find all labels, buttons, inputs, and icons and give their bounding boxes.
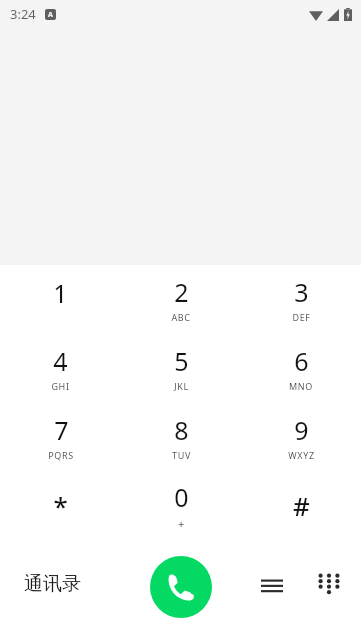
staticText: PQRS [48, 449, 74, 461]
staticText: 2 [174, 275, 189, 309]
button[interactable]: 3 [241, 265, 361, 333]
staticText: 5 [174, 344, 189, 378]
staticText: 8 [174, 413, 189, 447]
staticText: # [293, 488, 310, 523]
staticText: 3 [294, 275, 309, 309]
button[interactable]: 6 [241, 333, 361, 402]
button[interactable]: 8 [121, 402, 241, 471]
staticText: 7 [54, 413, 69, 447]
button[interactable]: * [0, 471, 121, 540]
staticText: 4 [53, 344, 68, 378]
button[interactable]: 通讯录 [14, 564, 91, 604]
staticText: 6 [294, 344, 309, 378]
staticText: WXYZ [288, 449, 315, 461]
staticText: 1 [53, 276, 68, 310]
staticText: ABC [171, 311, 191, 323]
staticText: JKL [174, 380, 189, 392]
staticText: + [178, 516, 185, 531]
button[interactable]: Call log [252, 564, 292, 604]
staticText: A [48, 10, 53, 20]
staticText: 通讯录 [24, 572, 81, 596]
button[interactable]: 4 [0, 333, 121, 402]
staticText: GHI [51, 380, 70, 392]
button[interactable]: 2 [121, 265, 241, 333]
staticText: * [53, 488, 68, 523]
button[interactable]: 7 [0, 402, 121, 471]
button[interactable]: 9 [241, 402, 361, 471]
staticText: TUV [172, 449, 191, 461]
button[interactable]: Call [150, 556, 212, 618]
staticText: 0 [174, 480, 189, 514]
staticText: MNO [289, 380, 313, 392]
button[interactable]: 1 [0, 265, 121, 333]
staticText: 3:24 [10, 5, 36, 23]
staticText: 9 [294, 413, 309, 447]
button[interactable]: Keypad [309, 564, 349, 604]
button[interactable]: # [241, 471, 361, 540]
button[interactable]: 0 [121, 471, 241, 540]
button[interactable]: 5 [121, 333, 241, 402]
staticText: DEF [292, 311, 311, 323]
